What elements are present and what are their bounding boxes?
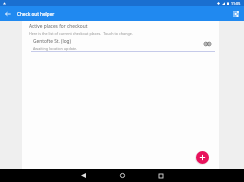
button[interactable]: Settings [228,6,243,21]
button[interactable]: Gentofte St. (log) [22,37,219,51]
staticText: Awaiting location update. [33,46,78,51]
button[interactable]: Back [77,169,90,182]
staticText: Gentofte St. (log) [33,38,71,45]
staticText: Active places for checkout [29,23,88,30]
staticText: 11:05 [231,1,241,6]
button[interactable]: Add place [196,151,209,164]
staticText: Check out helper [17,11,55,17]
button[interactable]: Recents [154,169,167,182]
button[interactable]: Home [116,169,129,182]
button[interactable]: Toggle place [200,37,214,51]
button[interactable]: Back [0,6,16,21]
staticText: Here is the list of current checkout pla… [29,31,133,36]
